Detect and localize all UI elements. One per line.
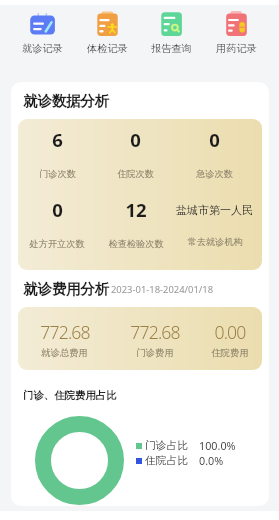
staticText: 0	[209, 127, 220, 152]
staticText: 100.0%	[199, 438, 236, 453]
button[interactable]: 用药记录	[215, 10, 258, 55]
staticText: 0.0%	[199, 453, 224, 468]
staticText: 用药记录	[216, 42, 257, 55]
staticText: 就诊记录	[22, 42, 63, 55]
staticText: 常去就诊机构	[187, 236, 243, 248]
staticText: 报告查询	[151, 42, 192, 55]
staticText: 6	[52, 127, 63, 152]
staticText: 门诊次数	[39, 168, 76, 180]
staticText: 处方开立次数	[29, 238, 85, 250]
button[interactable]: 报告查询	[150, 10, 193, 55]
staticText: 0	[130, 127, 141, 152]
other: 报告查询	[159, 10, 184, 38]
button[interactable]: 体检记录	[86, 10, 129, 55]
staticText: 772.68	[40, 320, 90, 344]
staticText: 急诊次数	[196, 168, 233, 180]
staticText: 体检记录	[87, 42, 128, 55]
staticText: 盐城市第一人民医	[175, 203, 254, 217]
staticText: 772.68	[130, 320, 180, 344]
staticText: 0.00	[214, 320, 246, 344]
staticText: 12	[125, 197, 147, 222]
staticText: 门诊占比	[145, 439, 189, 453]
staticText: 就诊费用分析	[23, 280, 110, 298]
other: 用药记录	[224, 10, 249, 38]
button[interactable]: 住院占比	[136, 453, 224, 468]
staticText: 门诊费用	[136, 347, 174, 359]
button[interactable]: 就诊记录	[21, 10, 64, 55]
staticText: 门诊、住院费用占比	[23, 389, 117, 402]
staticText: 0	[52, 197, 63, 222]
staticText: 住院占比	[145, 454, 189, 468]
staticText: 2023-01-18-2024/01/18	[111, 283, 214, 296]
staticText: 就诊数据分析	[23, 92, 110, 110]
other: 就诊记录	[30, 10, 55, 38]
button[interactable]: 门诊占比	[136, 438, 236, 453]
other: 体检记录	[95, 10, 120, 38]
staticText: 住院费用	[211, 347, 249, 359]
staticText: 检查检验次数	[108, 238, 164, 250]
staticText: 就诊总费用	[41, 347, 88, 359]
staticText: 住院次数	[117, 168, 154, 180]
